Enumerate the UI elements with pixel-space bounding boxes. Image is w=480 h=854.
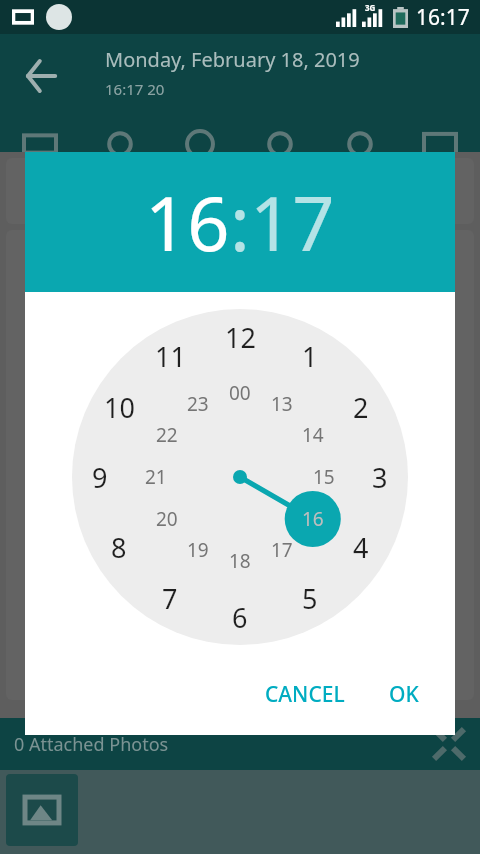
- button[interactable]: 4: [353, 529, 369, 566]
- button[interactable]: 9: [92, 459, 108, 496]
- button[interactable]: 19: [187, 537, 209, 563]
- staticText: 16: [145, 172, 230, 273]
- button[interactable]: 15: [313, 464, 335, 490]
- staticText: 19: [187, 537, 209, 563]
- button[interactable]: Add photo: [6, 774, 78, 846]
- button[interactable]: [6, 230, 474, 700]
- staticText: CANCEL: [265, 680, 345, 709]
- button[interactable]: [6, 158, 474, 224]
- button[interactable]: 2: [353, 389, 369, 426]
- button[interactable]: 8: [111, 529, 127, 566]
- button[interactable]: 16: [302, 506, 324, 532]
- staticText: 8: [111, 529, 127, 566]
- staticText: 9: [92, 459, 108, 496]
- button[interactable]: Back: [20, 54, 64, 98]
- staticText: 3G: [365, 2, 376, 13]
- staticText: 20: [156, 506, 178, 532]
- button[interactable]: 18: [229, 548, 251, 574]
- button[interactable]: Toolbar action 6: [422, 126, 458, 162]
- staticText: 3: [372, 459, 388, 496]
- staticText: 4: [353, 529, 369, 566]
- staticText: 2: [353, 389, 369, 426]
- staticText: 1: [302, 338, 318, 375]
- button[interactable]: 12: [225, 319, 256, 356]
- button[interactable]: Collapse: [432, 727, 466, 761]
- button[interactable]: Toolbar action 3: [182, 126, 218, 162]
- button[interactable]: 6: [232, 599, 248, 636]
- staticText: OK: [389, 680, 419, 709]
- button[interactable]: 16: [145, 172, 230, 273]
- button[interactable]: 20: [156, 506, 178, 532]
- button[interactable]: CANCEL: [251, 666, 359, 723]
- button[interactable]: Toolbar action 1: [22, 126, 58, 162]
- staticText: 15: [313, 464, 335, 490]
- staticText: 12: [225, 319, 256, 356]
- staticText: 6: [232, 599, 248, 636]
- button[interactable]: 11: [155, 338, 186, 375]
- staticText: 5: [302, 580, 318, 617]
- button[interactable]: 00: [229, 380, 251, 406]
- staticText: 13: [271, 391, 293, 417]
- staticText: 00: [229, 380, 251, 406]
- button[interactable]: 17: [250, 172, 335, 273]
- button[interactable]: OK: [375, 666, 433, 723]
- staticText: 17: [250, 172, 335, 273]
- button[interactable]: 14: [302, 422, 324, 448]
- button[interactable]: 17: [271, 537, 293, 563]
- staticText: 22: [156, 422, 178, 448]
- staticText: 7: [162, 580, 178, 617]
- staticText: 21: [145, 464, 167, 490]
- staticText: 18: [229, 548, 251, 574]
- button[interactable]: 7: [162, 580, 178, 617]
- staticText: 10: [104, 389, 135, 426]
- staticText: 17: [271, 537, 293, 563]
- staticText: 14: [302, 422, 324, 448]
- button[interactable]: 10: [104, 389, 135, 426]
- staticText: 0 Attached Photos: [14, 732, 169, 757]
- button[interactable]: 3: [372, 459, 388, 496]
- button[interactable]: Toolbar action 2: [102, 126, 138, 162]
- staticText: 16:17 20: [105, 79, 165, 99]
- button[interactable]: 22: [156, 422, 178, 448]
- staticText: Monday, February 18, 2019: [105, 46, 360, 73]
- staticText: 16: [302, 506, 324, 532]
- button[interactable]: 23: [187, 391, 209, 417]
- staticText: 16:17: [416, 3, 470, 32]
- button[interactable]: Toolbar action 4: [262, 126, 298, 162]
- button[interactable]: 5: [302, 580, 318, 617]
- button[interactable]: Toolbar action 5: [342, 126, 378, 162]
- staticText: 11: [155, 338, 186, 375]
- staticText: :: [230, 172, 250, 273]
- staticText: 23: [187, 391, 209, 417]
- button[interactable]: 1: [302, 338, 318, 375]
- button[interactable]: 13: [271, 391, 293, 417]
- button[interactable]: 21: [145, 464, 167, 490]
